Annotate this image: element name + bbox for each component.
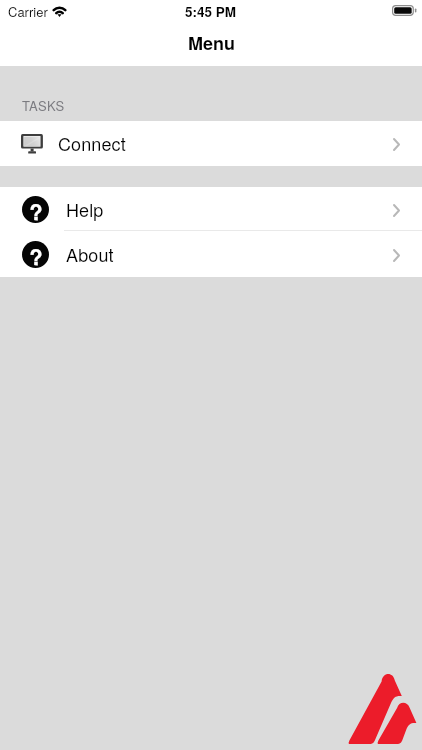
button[interactable]: Connect	[0, 121, 422, 166]
staticText: About	[66, 241, 114, 267]
staticText: TASKS	[22, 96, 65, 115]
staticText: Carrier	[8, 2, 48, 21]
staticText: Help	[66, 196, 104, 222]
button[interactable]: About	[0, 232, 422, 277]
staticText: Menu	[188, 30, 235, 56]
staticText: ?	[29, 196, 43, 222]
button[interactable]: Help	[0, 187, 422, 232]
staticText: 5:45 PM	[185, 2, 237, 21]
staticText: Connect	[58, 130, 126, 156]
staticText: ?	[29, 241, 43, 267]
